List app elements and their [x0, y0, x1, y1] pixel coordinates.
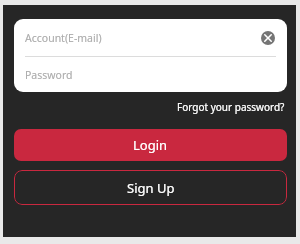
button[interactable]: Forgot your password?	[175, 97, 287, 117]
staticText: Forgot your password?	[177, 100, 285, 114]
button[interactable]: Password	[14, 57, 287, 92]
staticText: Account(E-mail)	[25, 31, 259, 45]
staticText: Sign Up	[127, 179, 175, 197]
button[interactable]: Login	[14, 129, 287, 161]
staticText: Login	[133, 136, 168, 154]
staticText: Password	[25, 68, 73, 82]
button[interactable]: Account(E-mail)	[14, 19, 287, 56]
button[interactable]: Clear account field	[259, 29, 277, 47]
button[interactable]: Sign Up	[14, 170, 287, 205]
